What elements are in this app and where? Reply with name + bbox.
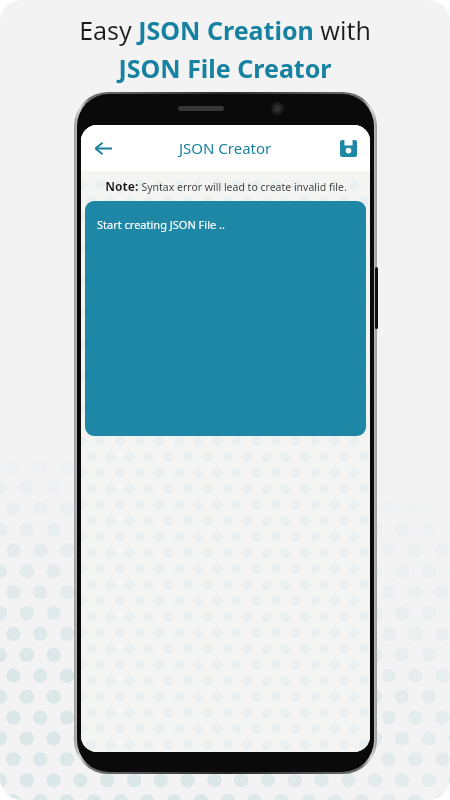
button[interactable]: Back — [81, 126, 125, 170]
button[interactable]: Start creating JSON File .. — [85, 201, 366, 436]
staticText: JSON Creator — [179, 138, 272, 158]
staticText: Start creating JSON File .. — [97, 217, 225, 232]
button[interactable]: Save — [326, 126, 370, 170]
staticText: JSON File Creator — [118, 51, 332, 85]
staticText: Note: Syntax error will lead to create i… — [105, 178, 347, 194]
staticText: Easy JSON Creation with — [79, 13, 371, 47]
